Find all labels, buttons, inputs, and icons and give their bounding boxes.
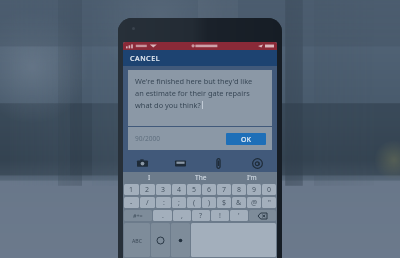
staticText: 3 — [161, 185, 166, 195]
button[interactable]: Settings — [171, 223, 190, 257]
button[interactable]: 2 — [140, 184, 155, 195]
staticText: @ — [251, 198, 258, 208]
button[interactable]: CANCEL — [123, 50, 277, 66]
button[interactable]: Gallery — [161, 154, 199, 172]
button[interactable]: Mention — [238, 154, 277, 172]
button[interactable]: We're finished here but they'd like — [135, 76, 266, 126]
button[interactable]: " — [262, 197, 276, 208]
staticText: The — [195, 173, 207, 182]
staticText: / — [146, 198, 149, 208]
staticText: ; — [178, 198, 180, 208]
button[interactable]: The — [175, 172, 226, 183]
staticText: 5 — [192, 185, 197, 195]
button[interactable]: ! — [211, 210, 229, 221]
button[interactable]: ( — [187, 197, 201, 208]
staticText: 8 — [237, 185, 242, 195]
button[interactable]: I — [123, 172, 175, 183]
staticText: , — [181, 211, 183, 221]
button[interactable]: 6 — [202, 184, 216, 195]
button[interactable]: Camera — [123, 154, 161, 172]
staticText: We're finished here but they'd like — [135, 76, 253, 86]
button[interactable]: - — [124, 197, 139, 208]
staticText: ) — [208, 198, 211, 208]
button[interactable]: 1 — [124, 184, 139, 195]
button[interactable]: : — [156, 197, 171, 208]
staticText: what do you think? — [135, 100, 201, 110]
button[interactable]: 5 — [187, 184, 201, 195]
button[interactable]: Emoji — [151, 223, 170, 257]
button[interactable]: Backspace — [249, 210, 276, 221]
staticText: 1 — [129, 185, 134, 195]
button[interactable]: ) — [202, 197, 216, 208]
staticText: I'm — [247, 173, 257, 182]
staticText: 0 — [267, 185, 272, 195]
staticText: $ — [222, 198, 227, 208]
button[interactable]: I'm — [226, 172, 277, 183]
button[interactable]: CANCEL — [130, 53, 160, 63]
button[interactable]: ? — [192, 210, 210, 221]
staticText: #+= — [133, 212, 143, 219]
button[interactable]: & — [232, 197, 246, 208]
button[interactable]: . — [153, 210, 172, 221]
staticText: ' — [238, 211, 240, 221]
button[interactable]: ' — [230, 210, 248, 221]
button[interactable]: OK — [226, 133, 266, 145]
staticText: an estimate for their gate repairs — [135, 88, 250, 98]
staticText: & — [236, 198, 242, 208]
button[interactable]: / — [140, 197, 155, 208]
staticText: 2 — [145, 185, 150, 195]
staticText: ? — [199, 211, 203, 221]
staticText: 9 — [252, 185, 257, 195]
staticText: CANCEL — [130, 53, 160, 63]
button[interactable]: ; — [172, 197, 186, 208]
staticText: 6 — [207, 185, 212, 195]
button[interactable]: #+= — [124, 210, 152, 221]
staticText: 7 — [222, 185, 227, 195]
staticText: ABC — [132, 237, 142, 244]
staticText: ( — [193, 198, 196, 208]
button[interactable]: 4 — [172, 184, 186, 195]
button[interactable]: 0 — [262, 184, 276, 195]
button[interactable]: @ — [247, 197, 261, 208]
staticText: I — [148, 173, 151, 182]
staticText: " — [268, 198, 271, 208]
button[interactable]: ABC — [124, 223, 150, 257]
staticText: OK — [241, 135, 252, 144]
button[interactable]: 3 — [156, 184, 171, 195]
button[interactable]: 8 — [232, 184, 246, 195]
button[interactable]: Attach file — [199, 154, 238, 172]
button[interactable]: 7 — [217, 184, 231, 195]
staticText: ! — [219, 211, 221, 221]
staticText: 4 — [177, 185, 182, 195]
staticText: : — [163, 198, 165, 208]
staticText: . — [162, 211, 164, 221]
button[interactable]: 9 — [247, 184, 261, 195]
staticText: 90/2000 — [135, 134, 161, 143]
button[interactable]: $ — [217, 197, 231, 208]
button[interactable]: , — [173, 210, 191, 221]
staticText: - — [130, 198, 133, 208]
